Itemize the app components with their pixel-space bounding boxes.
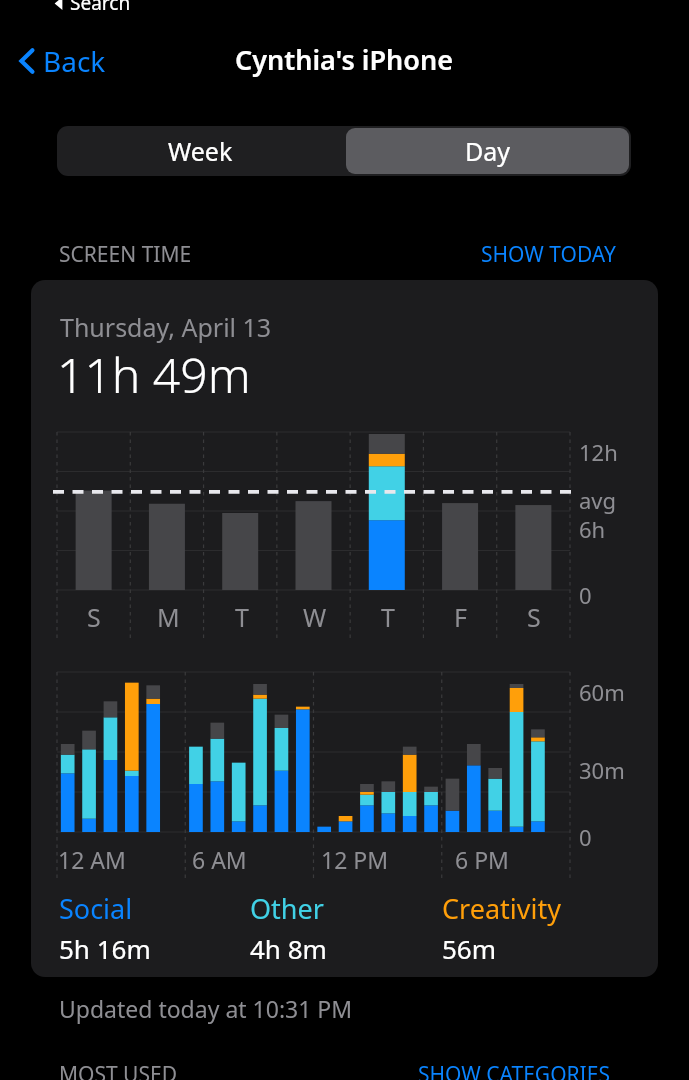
staticText: 12 AM [58, 844, 126, 875]
button[interactable]: Creativity [442, 890, 634, 966]
staticText: 12 PM [321, 844, 389, 875]
staticText: avg [579, 485, 617, 515]
button[interactable]: Day [346, 128, 629, 174]
staticText: F [454, 600, 467, 634]
staticText: 6h [579, 514, 606, 544]
staticText: 11h 49m [57, 342, 251, 407]
staticText: 60m [579, 677, 625, 707]
staticText: W [303, 600, 327, 634]
staticText: Search [70, 0, 131, 16]
staticText: 56m [442, 931, 497, 966]
staticText: Other [250, 890, 324, 927]
staticText: 4h 8m [250, 931, 327, 966]
staticText: Back [43, 42, 106, 80]
button[interactable]: Back [14, 34, 110, 88]
staticText: S [527, 600, 541, 634]
staticText: Cynthia's iPhone [235, 41, 454, 78]
button[interactable]: Back to Search [52, 0, 131, 16]
button[interactable]: Week [57, 126, 344, 176]
staticText: Social [59, 890, 133, 927]
staticText: Thursday, April 13 [60, 310, 272, 344]
staticText: 6 AM [192, 844, 247, 875]
staticText: 6 PM [455, 844, 509, 875]
staticText: T [381, 600, 395, 634]
staticText: 30m [579, 755, 625, 785]
staticText: S [87, 600, 101, 634]
button[interactable]: Social [59, 890, 250, 966]
staticText: SCREEN TIME [59, 240, 192, 269]
staticText: 5h 16m [59, 931, 151, 966]
staticText: 12h [579, 437, 618, 467]
staticText: Creativity [442, 890, 561, 927]
staticText: M [157, 600, 180, 634]
staticText: MOST USED [59, 1060, 177, 1080]
staticText: T [235, 600, 249, 634]
button[interactable]: SHOW CATEGORIES [418, 1060, 610, 1080]
staticText: Week [168, 134, 233, 168]
staticText: 0 [579, 822, 592, 852]
button[interactable]: Other [250, 890, 442, 966]
button[interactable]: SHOW TODAY [481, 240, 616, 269]
staticText: Updated today at 10:31 PM [59, 993, 353, 1024]
staticText: Day [465, 134, 511, 168]
staticText: 0 [579, 580, 592, 610]
